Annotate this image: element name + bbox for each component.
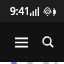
button[interactable]: Sent <box>38 62 54 64</box>
button[interactable]: Profile <box>54 62 58 64</box>
button[interactable]: Menu <box>8 29 34 55</box>
button[interactable]: Search <box>40 29 56 55</box>
button[interactable]: Home <box>6 62 22 64</box>
staticText: 9:41 <box>10 4 30 18</box>
button[interactable]: Starred <box>22 62 38 64</box>
